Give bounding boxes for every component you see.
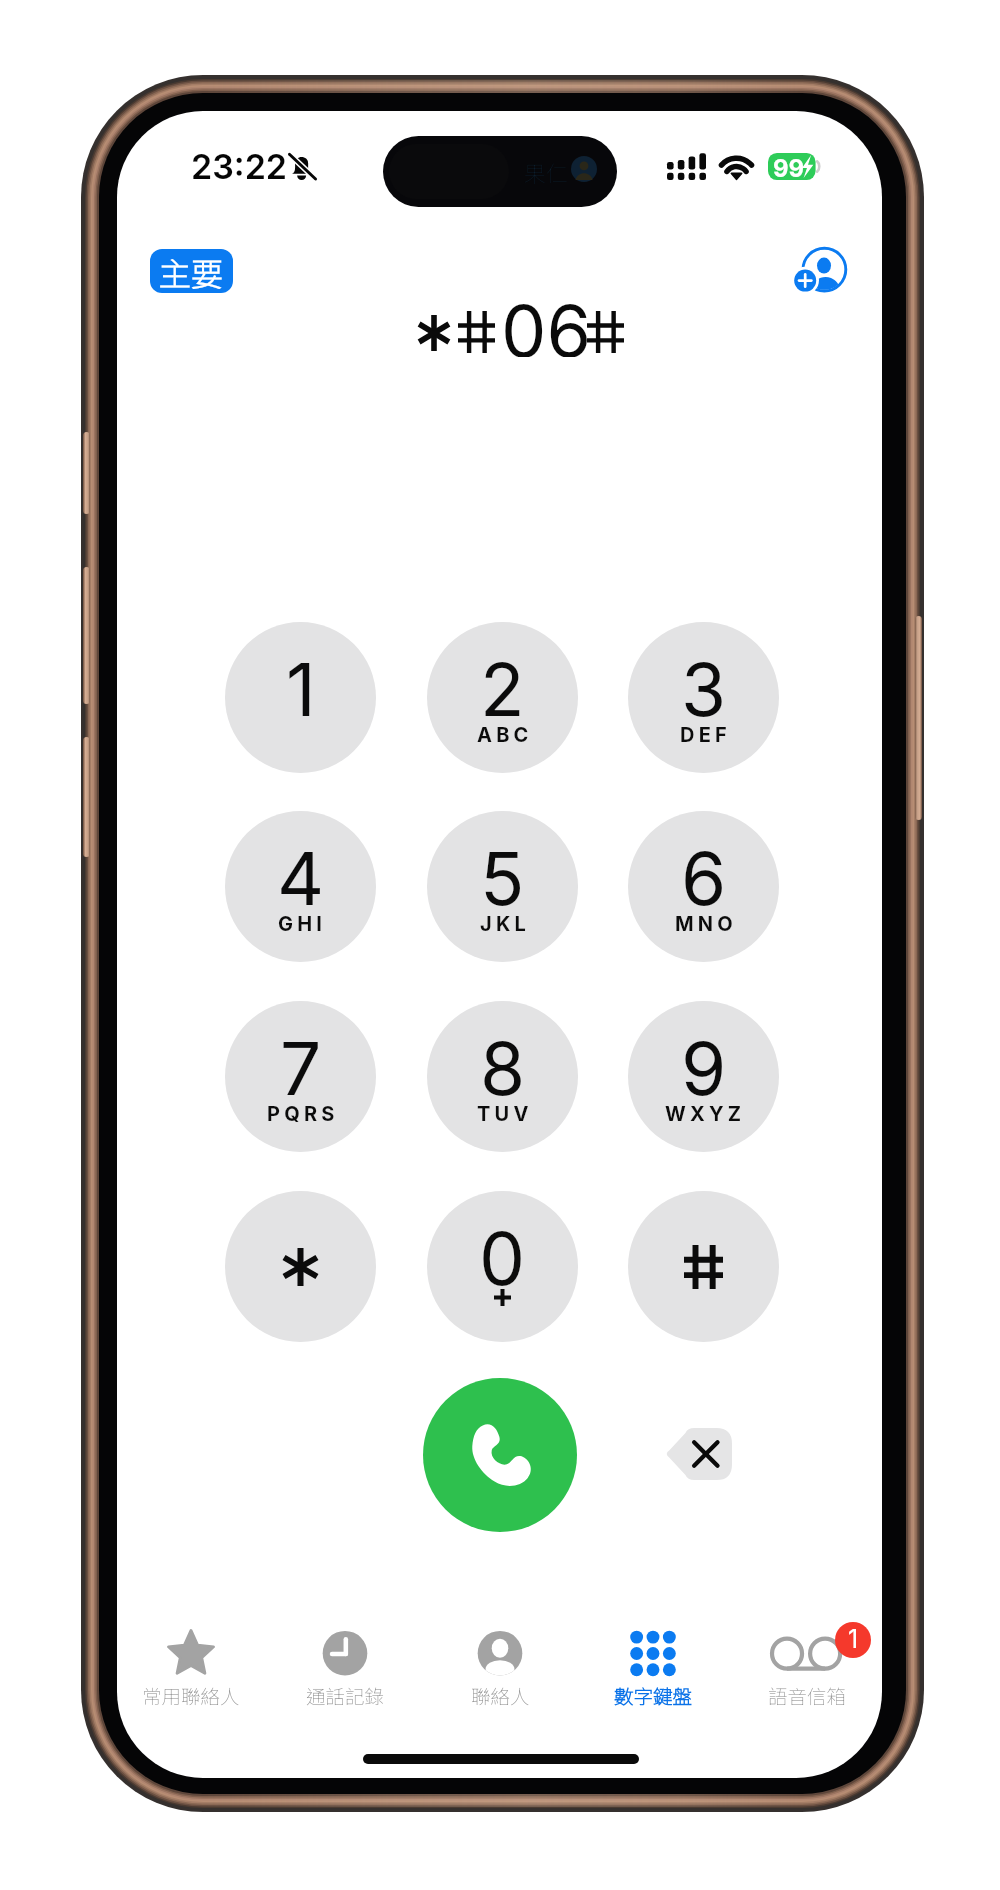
staticText: 主要 xyxy=(159,249,224,293)
staticText: 8 xyxy=(480,1024,526,1112)
staticText: 2 xyxy=(480,645,525,733)
staticText: 1 xyxy=(286,645,316,733)
button[interactable]: 6 xyxy=(628,811,779,962)
button[interactable]: Call xyxy=(423,1378,577,1532)
staticText: 通話記錄 xyxy=(306,1681,385,1709)
button[interactable]: 常用聯絡人 xyxy=(117,1620,281,1724)
staticText: 0 xyxy=(479,1214,526,1302)
button[interactable] xyxy=(628,1191,779,1342)
button[interactable]: Add contact xyxy=(788,242,852,298)
button[interactable]: 2 xyxy=(427,622,578,773)
staticText: 9 xyxy=(681,1024,727,1112)
button[interactable]: 3 xyxy=(628,622,779,773)
staticText: MNO xyxy=(675,912,737,936)
staticText: WXYZ xyxy=(665,1102,746,1126)
button[interactable]: 數字鍵盤 xyxy=(563,1620,743,1724)
button[interactable]: 4 xyxy=(225,811,376,962)
button[interactable]: 8 xyxy=(427,1001,578,1152)
button[interactable]: 主要 xyxy=(150,249,233,293)
staticText: 3 xyxy=(681,645,727,733)
staticText: ABC xyxy=(477,723,533,747)
staticText: 99 xyxy=(773,154,805,181)
button[interactable]: Delete xyxy=(664,1428,732,1480)
button[interactable]: 1 xyxy=(225,622,376,773)
button[interactable]: 7 xyxy=(225,1001,376,1152)
staticText: 4 xyxy=(277,834,325,922)
staticText: DEF xyxy=(680,723,731,747)
staticText: PQRS xyxy=(267,1102,339,1126)
staticText: 23:22 xyxy=(191,146,288,187)
staticText: 5 xyxy=(480,834,525,922)
button[interactable]: 通話記錄 xyxy=(255,1620,435,1724)
button[interactable] xyxy=(225,1191,376,1342)
staticText: 果仁 xyxy=(524,156,569,188)
button[interactable]: 9 xyxy=(628,1001,779,1152)
staticText: JKL xyxy=(480,912,530,936)
staticText: TUV xyxy=(477,1102,533,1126)
staticText: 聯絡人 xyxy=(471,1681,530,1709)
staticText: 6 xyxy=(681,834,727,922)
button[interactable]: 5 xyxy=(427,811,578,962)
staticText: 06 xyxy=(501,287,592,357)
staticText: 常用聯絡人 xyxy=(142,1681,240,1709)
staticText: 7 xyxy=(280,1024,322,1112)
staticText: 1 xyxy=(848,1624,859,1654)
button[interactable]: 0 xyxy=(427,1191,578,1342)
button[interactable]: 語音信箱 xyxy=(717,1620,882,1724)
staticText: GHI xyxy=(278,912,327,936)
staticText: 語音信箱 xyxy=(768,1681,847,1709)
staticText: 數字鍵盤 xyxy=(614,1681,693,1709)
button[interactable]: 聯絡人 xyxy=(410,1620,590,1724)
